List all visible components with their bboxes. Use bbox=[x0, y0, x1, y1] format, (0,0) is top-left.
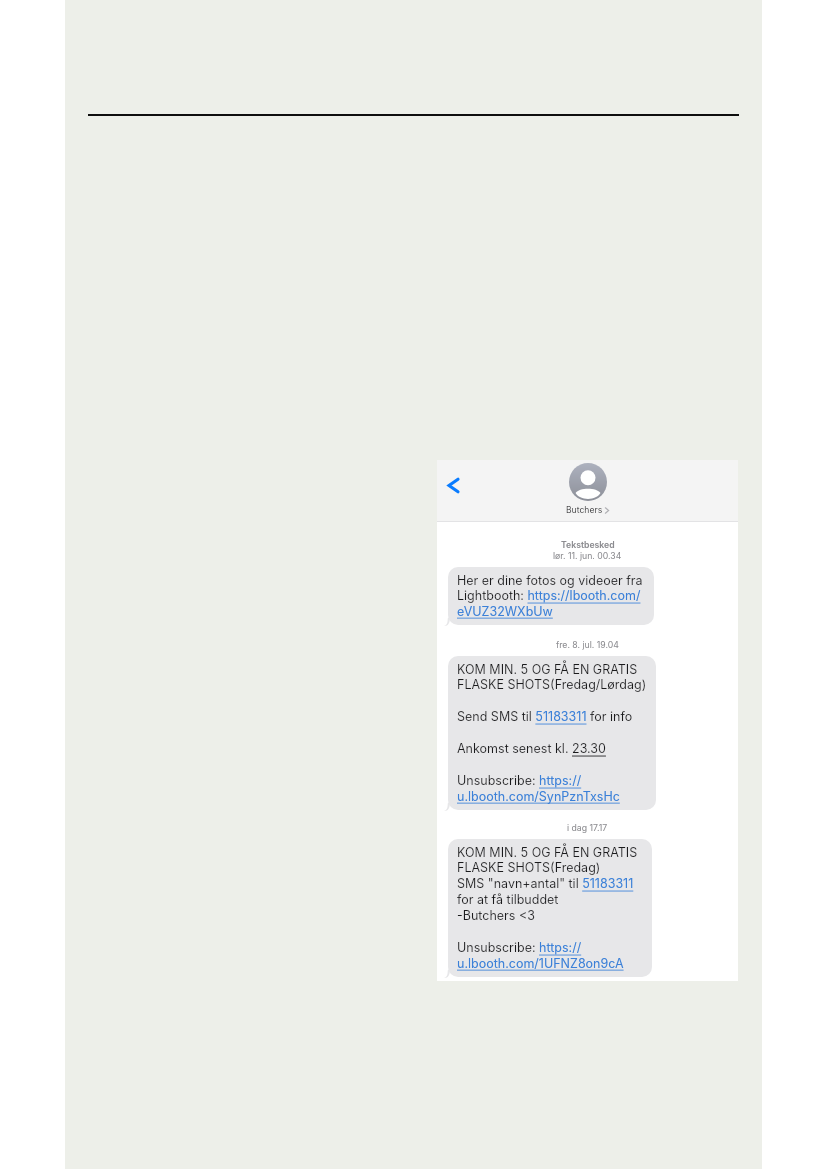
staticText: Tekstbesked bbox=[561, 540, 615, 551]
button[interactable]: KOM MIN. 5 OG FÅ EN GRATIS FLASKE SHOTS(… bbox=[448, 656, 656, 810]
button[interactable]: Her er dine fotos og videoer fra Lightbo… bbox=[448, 567, 654, 625]
staticText: fre. 8. jul. 19.04 bbox=[556, 640, 619, 651]
staticText: lør. 11. jun. 00.34 bbox=[553, 551, 622, 562]
button[interactable]: Back bbox=[439, 463, 471, 507]
button[interactable]: KOM MIN. 5 OG FÅ EN GRATIS FLASKE SHOTS(… bbox=[448, 839, 652, 977]
staticText: Butchers bbox=[566, 505, 603, 515]
staticText: Her er dine fotos og videoer fra Lightbo… bbox=[457, 573, 645, 619]
staticText: KOM MIN. 5 OG FÅ EN GRATIS FLASKE SHOTS(… bbox=[457, 662, 647, 804]
button[interactable]: Butchers bbox=[558, 463, 617, 515]
staticText: KOM MIN. 5 OG FÅ EN GRATIS FLASKE SHOTS(… bbox=[457, 845, 643, 971]
staticText: i dag 17.17 bbox=[567, 823, 608, 834]
